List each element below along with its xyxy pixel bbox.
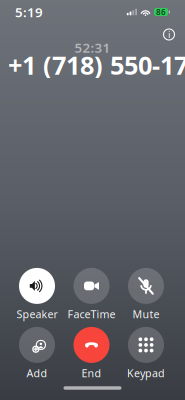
button[interactable]: Speaker: [10, 269, 64, 320]
staticText: Speaker: [16, 307, 57, 321]
staticText: 52:31: [74, 39, 110, 56]
button[interactable]: FaceTime: [64, 269, 118, 320]
staticText: Keypad: [127, 366, 165, 380]
staticText: i: [168, 28, 170, 41]
staticText: FaceTime: [67, 307, 115, 321]
button[interactable]: Add: [10, 328, 64, 379]
staticText: Mute: [132, 307, 159, 321]
staticText: 5:19: [15, 3, 43, 21]
staticText: Add: [26, 366, 47, 380]
button[interactable]: Keypad: [119, 328, 173, 379]
button[interactable]: Call info: [157, 23, 180, 46]
staticText: End: [81, 366, 101, 380]
button[interactable]: End: [64, 328, 118, 379]
staticText: 86: [156, 7, 166, 17]
staticText: +1 (718) 550-1710: [8, 48, 185, 82]
button[interactable]: Mute: [119, 269, 173, 320]
